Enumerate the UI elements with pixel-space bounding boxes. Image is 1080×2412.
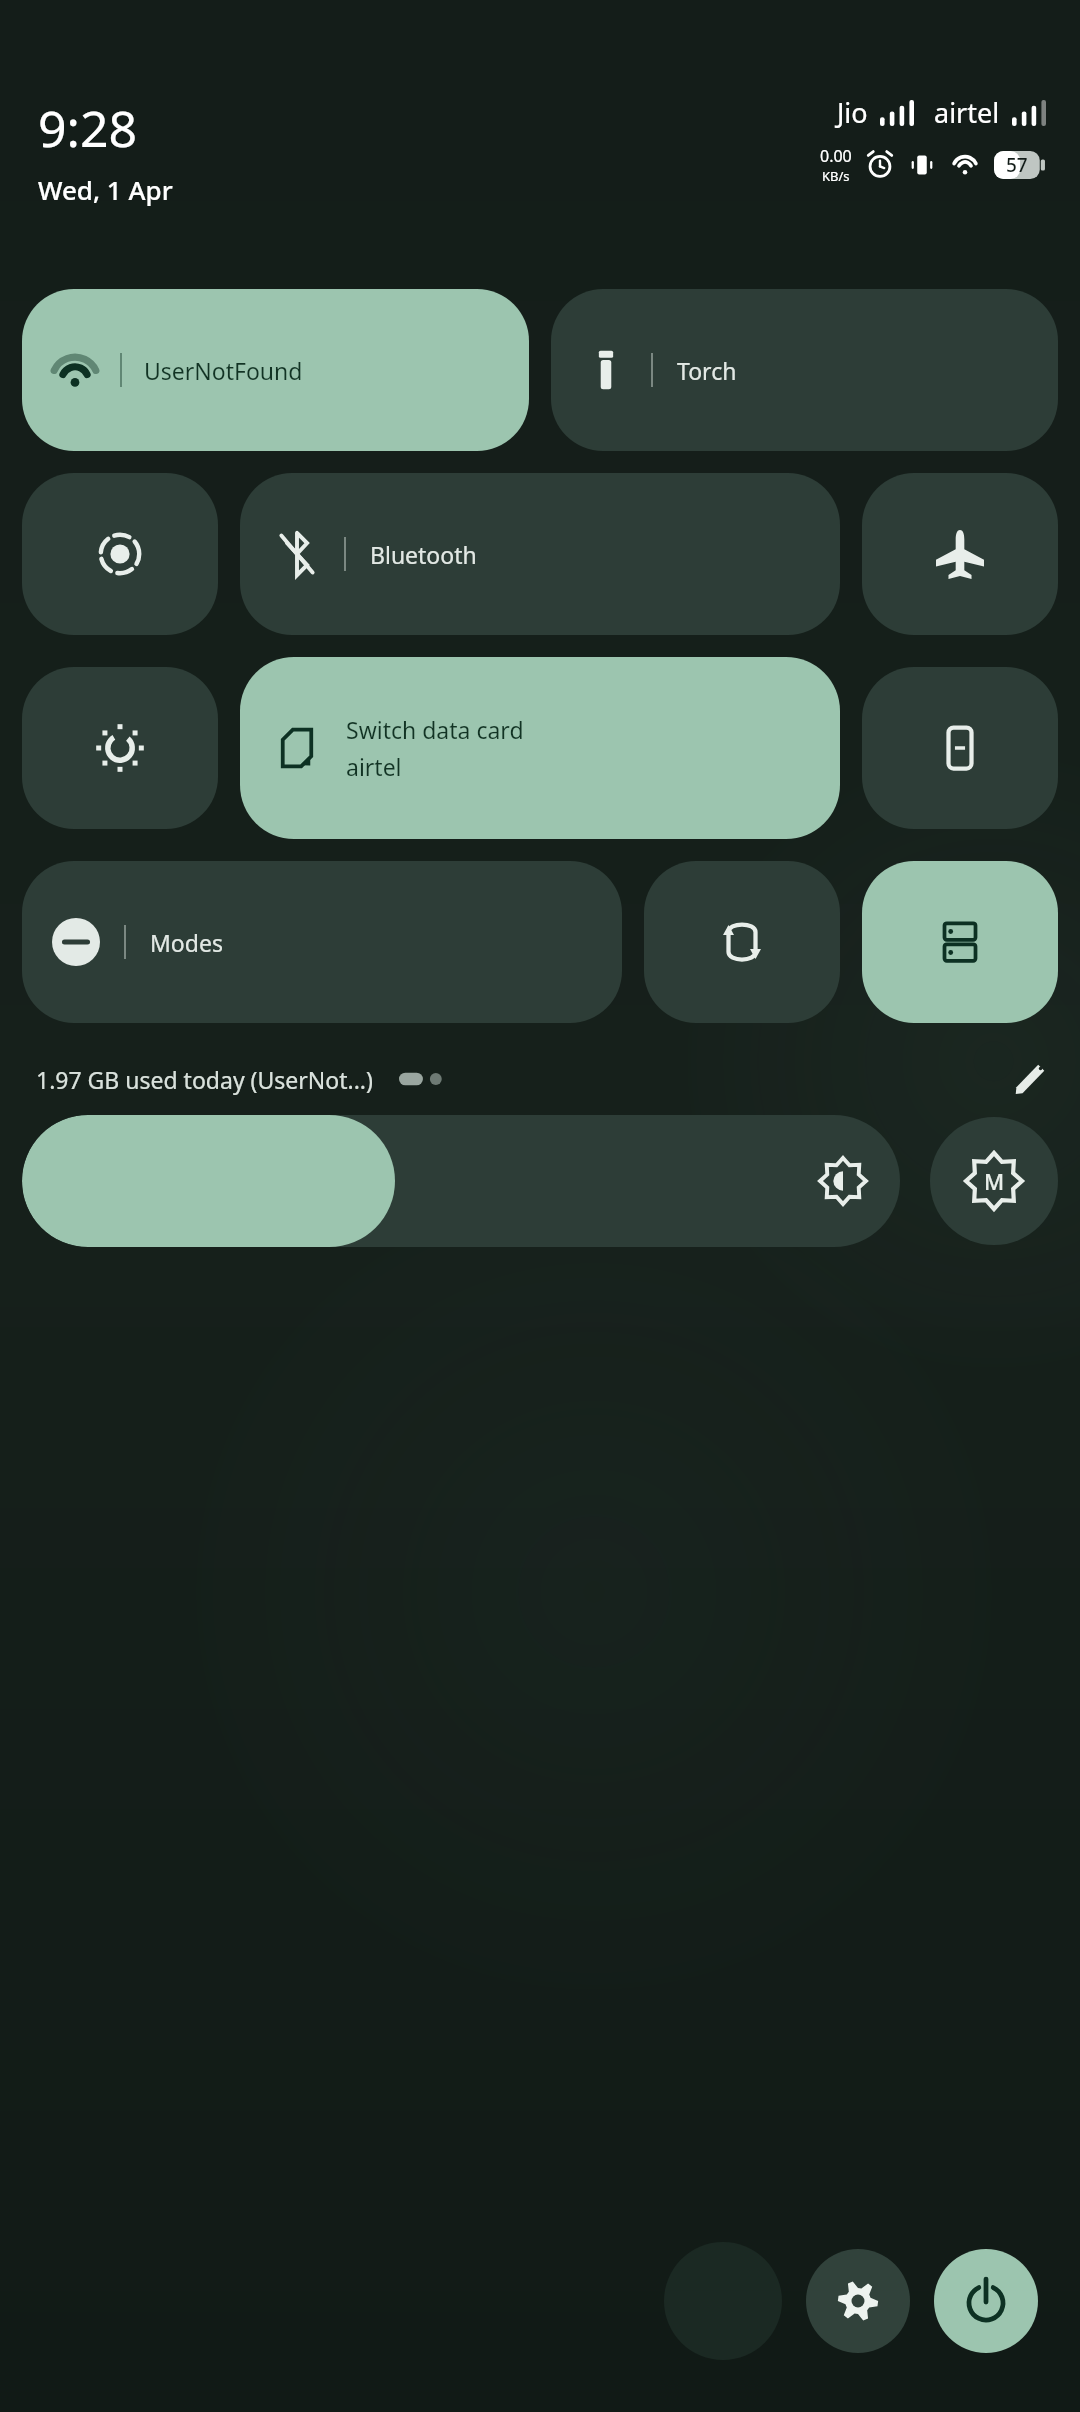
button[interactable]: Colour temperature: [22, 667, 218, 829]
staticText: Torch: [677, 355, 737, 386]
button[interactable]: User: [664, 2242, 782, 2360]
button[interactable]: Settings: [806, 2249, 910, 2353]
staticText: M: [984, 1166, 1005, 1196]
staticText: KB/s: [822, 167, 850, 185]
button[interactable]: Hotspot: [22, 473, 218, 635]
staticText: airtel: [346, 751, 402, 782]
button[interactable]: Device: [862, 667, 1058, 829]
button[interactable]: Mobile data: [862, 861, 1058, 1023]
button[interactable]: Torch: [551, 289, 1058, 451]
staticText: Modes: [150, 927, 223, 958]
staticText: UserNotFound: [144, 355, 303, 386]
staticText: Jio: [837, 94, 868, 131]
staticText: 1.97 GB used today (UserNot...): [36, 1064, 373, 1095]
button[interactable]: Reading mode: [930, 1117, 1058, 1245]
staticText: Wed, 1 Apr: [38, 172, 173, 207]
staticText: Bluetooth: [370, 539, 477, 570]
button[interactable]: Bluetooth: [240, 473, 840, 635]
button[interactable]: Modes: [22, 861, 622, 1023]
staticText: airtel: [934, 94, 1000, 131]
staticText: 57: [1006, 152, 1028, 178]
button[interactable]: Auto rotate: [644, 861, 840, 1023]
button[interactable]: UserNotFound: [22, 289, 529, 451]
button[interactable]: Power: [934, 2249, 1038, 2353]
staticText: 0.00: [820, 145, 852, 167]
button[interactable]: Airplane mode: [862, 473, 1058, 635]
button[interactable]: Edit tiles: [1002, 1051, 1058, 1107]
button[interactable]: Switch data card: [240, 657, 840, 839]
staticText: Switch data card: [346, 714, 524, 745]
staticText: 9:28: [38, 94, 138, 162]
button[interactable]: Brightness: [22, 1115, 900, 1247]
